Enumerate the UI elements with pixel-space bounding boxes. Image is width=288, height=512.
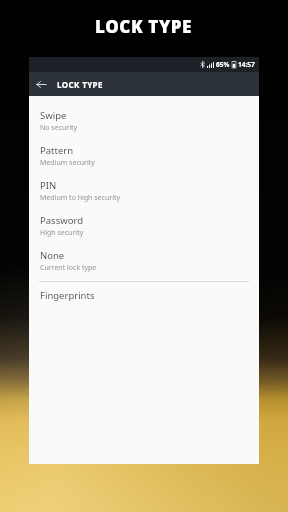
staticText: None: [40, 249, 65, 262]
staticText: Pattern: [40, 144, 74, 157]
button[interactable]: PIN: [29, 173, 259, 208]
staticText: PIN: [40, 179, 57, 192]
staticText: Fingerprints: [40, 289, 95, 302]
staticText: Swipe: [40, 109, 67, 122]
button[interactable]: Password: [29, 208, 259, 243]
staticText: 14:57: [238, 60, 255, 69]
staticText: Password: [40, 214, 83, 227]
button[interactable]: None: [29, 243, 259, 278]
button[interactable]: Fingerprints: [29, 282, 259, 308]
staticText: No security: [40, 123, 78, 133]
staticText: 65%: [216, 60, 230, 69]
staticText: LOCK TYPE: [57, 79, 103, 90]
staticText: Current lock type: [40, 263, 97, 273]
staticText: Medium security: [40, 158, 95, 168]
staticText: Medium to high security: [40, 193, 121, 203]
button[interactable]: Back: [29, 72, 53, 96]
staticText: High security: [40, 228, 84, 238]
button[interactable]: Pattern: [29, 138, 259, 173]
staticText: LOCK TYPE: [95, 15, 193, 38]
button[interactable]: Swipe: [29, 103, 259, 138]
